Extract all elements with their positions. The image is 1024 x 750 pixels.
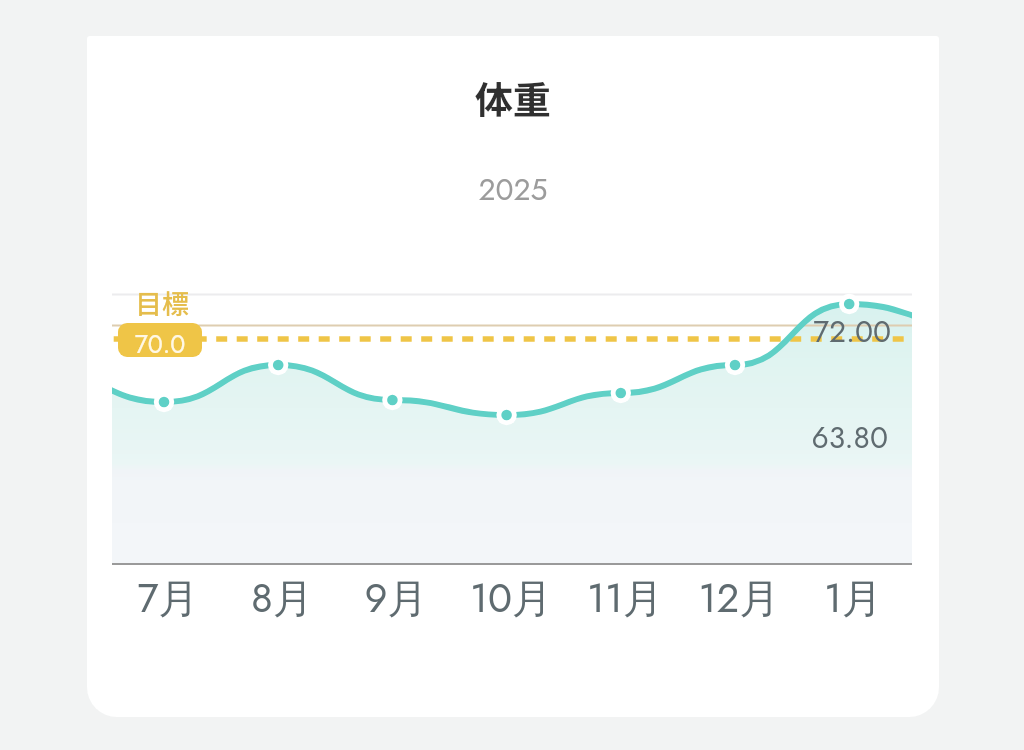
staticText: 72.00 <box>691 310 891 353</box>
staticText: 10月 <box>451 569 571 627</box>
staticText: 12月 <box>679 569 799 627</box>
staticText: 目標 <box>135 283 189 322</box>
button[interactable]: Goal weight 70.0 <box>118 323 202 357</box>
staticText: 1月 <box>793 569 913 627</box>
staticText: 11月 <box>565 569 685 627</box>
staticText: 63.80 <box>688 416 888 459</box>
button[interactable] <box>87 36 939 717</box>
staticText: 7月 <box>108 569 228 627</box>
staticText: 9月 <box>336 569 456 627</box>
staticText: 70.0 <box>118 326 202 357</box>
staticText: 体重 <box>87 70 939 125</box>
staticText: 8月 <box>222 569 342 627</box>
staticText: 2025 <box>87 168 939 211</box>
